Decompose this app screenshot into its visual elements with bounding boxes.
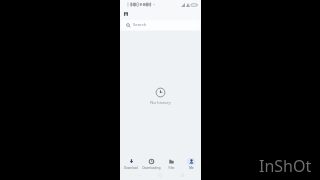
staticText: Me [189, 166, 194, 170]
staticText: Search [133, 22, 147, 28]
staticText: InShOt [259, 155, 312, 177]
button[interactable]: Home [158, 173, 163, 178]
staticText: Download [124, 166, 138, 170]
button[interactable]: Search [121, 20, 200, 30]
staticText: Downloading [142, 166, 161, 170]
button[interactable]: Download [120, 156, 141, 171]
button[interactable]: Recents [180, 173, 185, 178]
button[interactable]: Files [161, 156, 181, 171]
button[interactable]: Me [181, 156, 201, 171]
button[interactable]: App logo [123, 11, 129, 17]
staticText: Files [168, 166, 175, 170]
staticText: No history [150, 100, 171, 106]
button[interactable]: Downloading [141, 156, 161, 171]
